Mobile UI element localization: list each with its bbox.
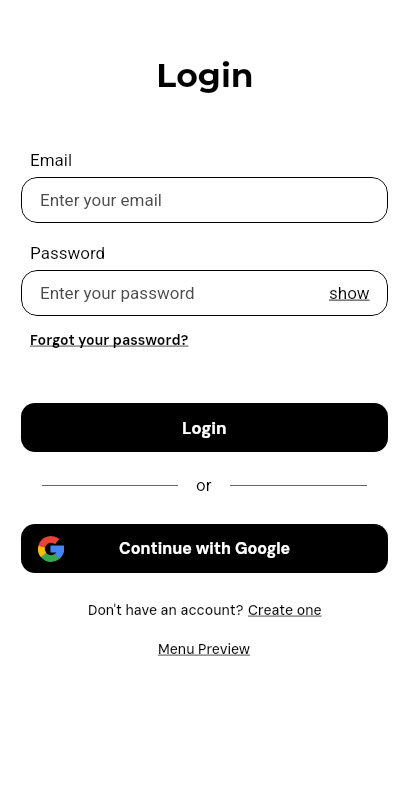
- staticText: Login: [156, 55, 254, 95]
- staticText: Continue with Google: [119, 538, 291, 559]
- button[interactable]: Continue with Google: [21, 524, 388, 573]
- button[interactable]: Create one: [248, 601, 322, 619]
- button[interactable]: Menu Preview: [158, 640, 251, 658]
- button[interactable]: Forgot your password?: [30, 331, 189, 349]
- button[interactable]: show: [329, 283, 370, 303]
- staticText: Email: [30, 150, 73, 170]
- staticText: Create one: [248, 601, 322, 619]
- staticText: Enter your email: [40, 190, 163, 210]
- staticText: Password: [30, 243, 106, 263]
- button[interactable]: Enter your email: [21, 177, 388, 223]
- staticText: Enter your password: [40, 283, 329, 303]
- staticText: Login: [182, 417, 227, 439]
- staticText: or: [196, 475, 212, 495]
- other: Google: [38, 536, 64, 562]
- staticText: show: [329, 283, 370, 303]
- staticText: Forgot your password?: [30, 331, 189, 349]
- staticText: Don't have an account?: [88, 601, 248, 619]
- staticText: Menu Preview: [158, 640, 251, 658]
- button[interactable]: Login: [21, 403, 388, 452]
